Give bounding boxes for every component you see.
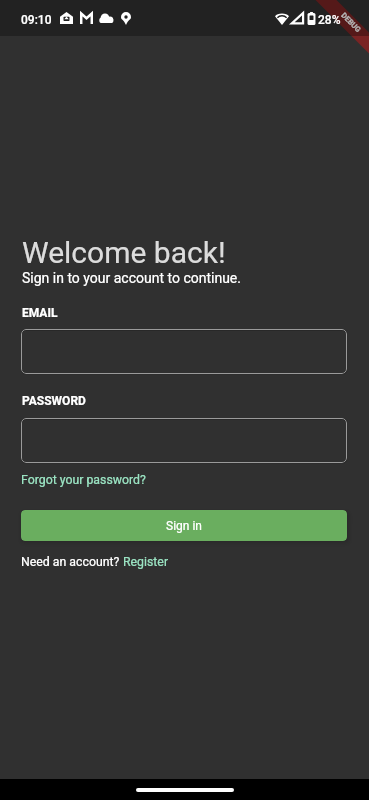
button[interactable] (21, 418, 347, 463)
staticText: EMAIL (22, 306, 58, 320)
button[interactable]: Register (123, 555, 169, 569)
staticText: 09:10 (21, 13, 52, 27)
button[interactable]: Forgot your password? (21, 473, 146, 487)
button[interactable] (21, 329, 347, 374)
staticText: DEBUG (339, 11, 363, 34)
staticText: PASSWORD (22, 394, 86, 408)
staticText: Need an account? (21, 555, 123, 569)
staticText: 28% (318, 13, 341, 27)
staticText: Welcome back! (22, 235, 226, 270)
staticText: Sign in to your account to continue. (22, 270, 241, 286)
staticText: Sign in (166, 519, 202, 533)
button[interactable]: Sign in (21, 510, 347, 541)
